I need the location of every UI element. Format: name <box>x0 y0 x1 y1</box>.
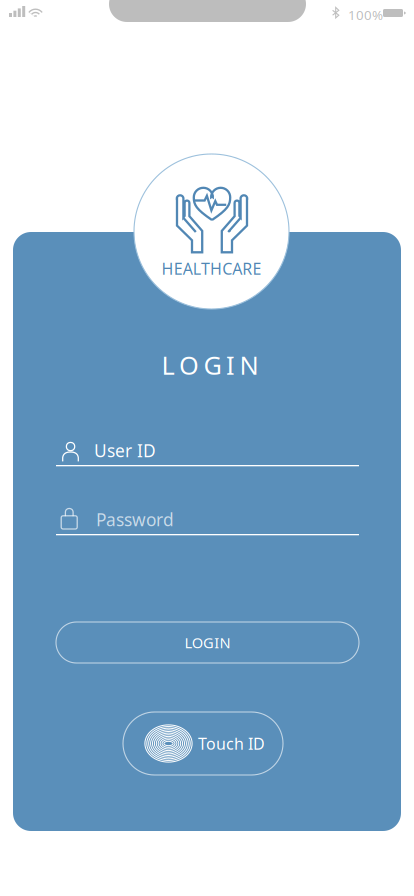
staticText: HEALTHCARE <box>162 258 261 279</box>
button[interactable]: LOGIN <box>56 622 359 663</box>
button[interactable]: User ID <box>56 439 359 467</box>
staticText: 100% <box>348 6 383 24</box>
staticText: Password <box>96 508 174 531</box>
staticText: Touch ID <box>198 733 265 754</box>
staticText: LOGIN <box>161 348 258 382</box>
button[interactable]: Touch ID <box>123 712 283 775</box>
button[interactable]: Password <box>56 508 359 536</box>
staticText: LOGIN <box>184 633 231 652</box>
staticText: User ID <box>94 439 156 462</box>
